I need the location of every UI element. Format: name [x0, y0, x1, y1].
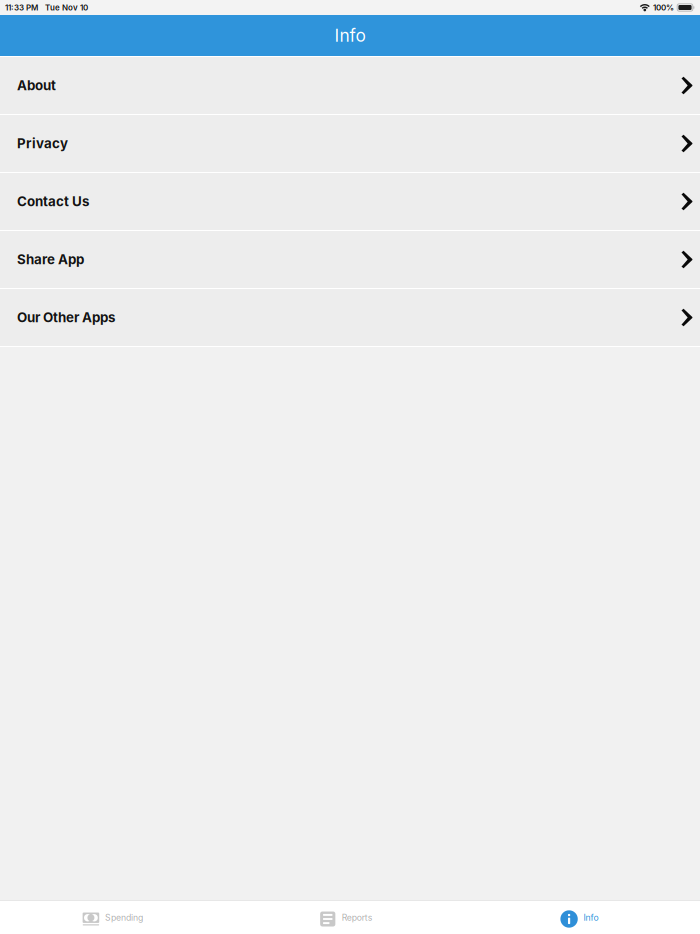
button[interactable]: Info: [463, 901, 696, 934]
staticText: Reports: [342, 912, 373, 923]
staticText: Contact Us: [17, 193, 89, 209]
staticText: Spending: [105, 912, 143, 923]
staticText: About: [17, 77, 56, 93]
staticText: 11:33 PM: [5, 3, 38, 12]
button[interactable]: Spending: [0, 901, 229, 934]
staticText: Share App: [17, 251, 84, 267]
staticText: Our Other Apps: [17, 309, 115, 325]
staticText: Info: [334, 25, 365, 46]
button[interactable]: Privacy: [0, 115, 700, 172]
staticText: Privacy: [17, 135, 68, 151]
staticText: Info: [584, 912, 599, 923]
button[interactable]: About: [0, 57, 700, 114]
staticText: Tue Nov 10: [45, 3, 88, 12]
button[interactable]: Contact Us: [0, 173, 700, 230]
button[interactable]: Share App: [0, 231, 700, 288]
button[interactable]: Reports: [229, 901, 463, 934]
staticText: 100%: [653, 3, 674, 12]
button[interactable]: Our Other Apps: [0, 289, 700, 346]
